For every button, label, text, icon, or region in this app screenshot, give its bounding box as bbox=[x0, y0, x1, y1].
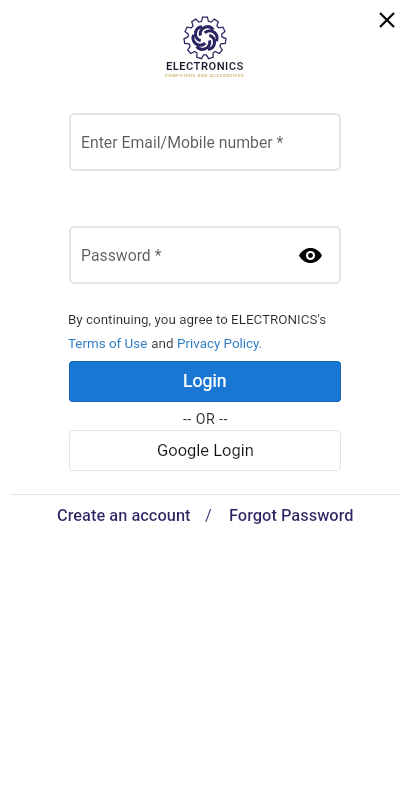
button[interactable]: Create an account bbox=[57, 502, 191, 529]
staticText: COMPUTERS AND ACCESSORIES bbox=[165, 73, 245, 78]
staticText: Password * bbox=[81, 246, 162, 265]
staticText: Login bbox=[183, 371, 227, 392]
staticText: Terms of Use bbox=[68, 336, 148, 352]
button[interactable]: Privacy Policy. bbox=[177, 336, 263, 352]
button[interactable]: Login bbox=[69, 361, 341, 402]
button[interactable]: Google Login bbox=[69, 430, 341, 471]
staticText: -- OR -- bbox=[183, 411, 228, 428]
staticText: By continuing, you agree to ELECTRONICS'… bbox=[68, 312, 327, 328]
button[interactable]: Forgot Password bbox=[229, 502, 354, 529]
button[interactable]: Enter Email/Mobile number * bbox=[69, 113, 341, 171]
staticText: Google Login bbox=[157, 441, 254, 460]
staticText: Create an account bbox=[57, 506, 191, 525]
button[interactable]: Password * bbox=[69, 226, 341, 284]
button[interactable]: Show password bbox=[297, 242, 323, 268]
staticText: Privacy Policy. bbox=[177, 336, 263, 352]
staticText: / bbox=[205, 506, 212, 525]
button[interactable]: Close bbox=[369, 2, 405, 38]
staticText: ELECTRONICS bbox=[166, 60, 244, 73]
staticText: and bbox=[148, 336, 177, 352]
staticText: Forgot Password bbox=[229, 506, 354, 525]
button[interactable]: Terms of Use bbox=[68, 336, 148, 352]
staticText: Enter Email/Mobile number * bbox=[81, 133, 284, 152]
